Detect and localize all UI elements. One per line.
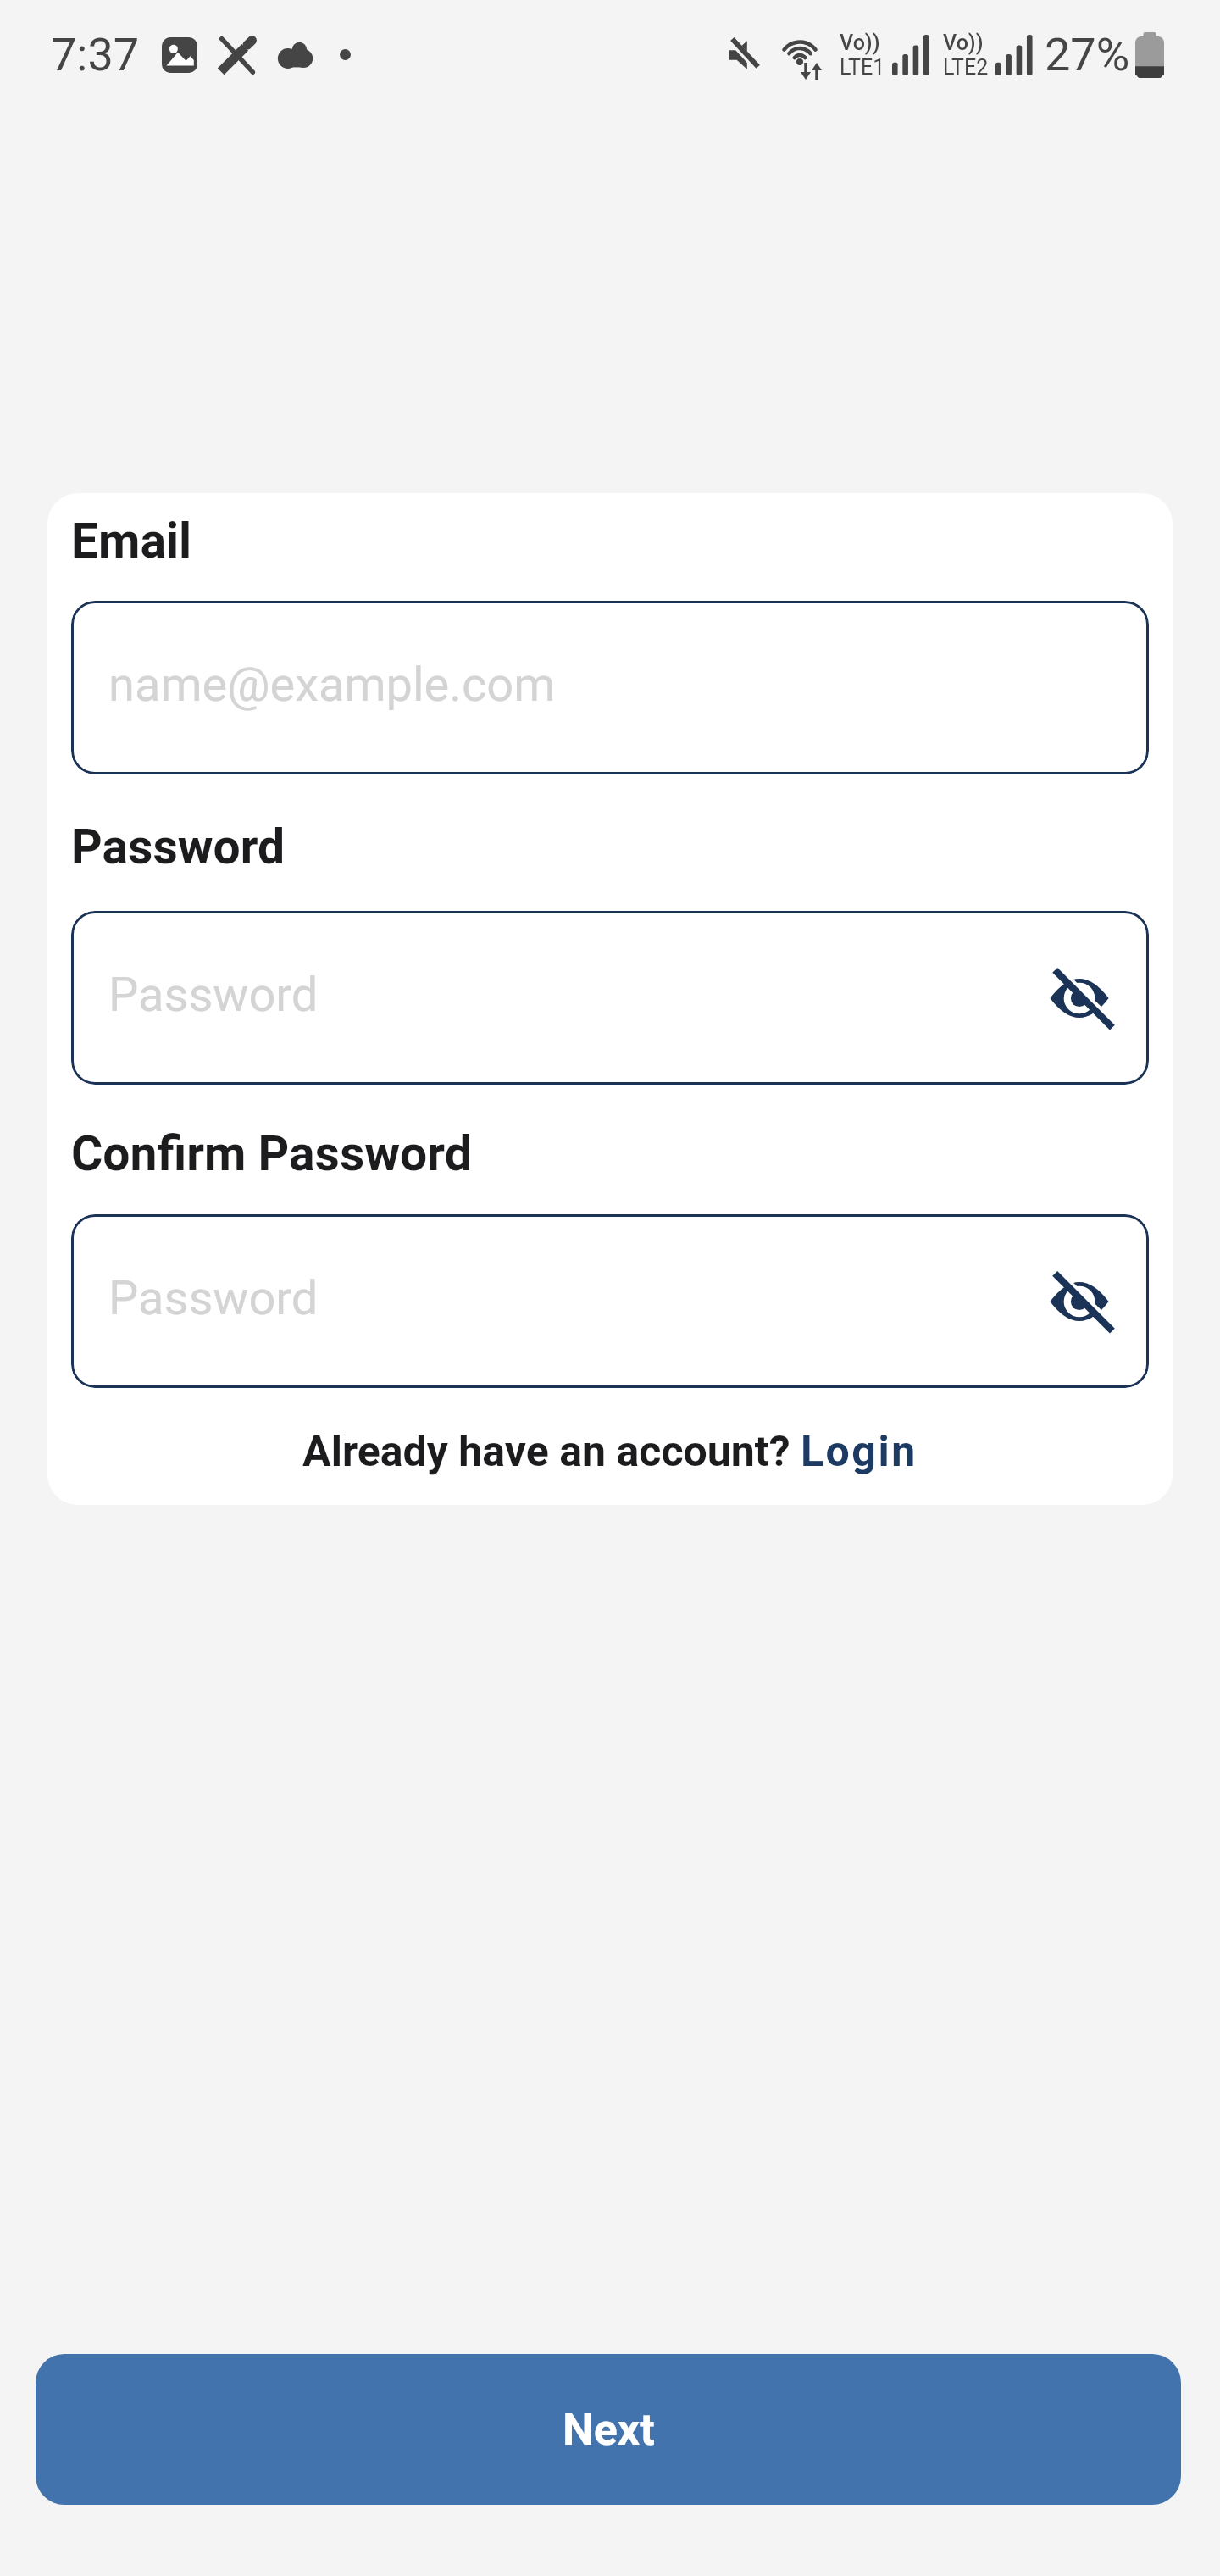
staticText: Password xyxy=(108,1270,319,1326)
button[interactable]: Password xyxy=(71,911,1149,1085)
staticText: 27% xyxy=(1045,28,1130,81)
staticText: Email xyxy=(71,513,192,569)
staticText: Vo)) xyxy=(840,31,880,55)
staticText: Already have an account? Login xyxy=(302,1427,918,1477)
staticText: name@example.com xyxy=(108,657,556,713)
staticText: Password xyxy=(71,819,286,875)
button[interactable]: Already have an account? Login xyxy=(71,1427,1149,1477)
staticText: Confirm Password xyxy=(71,1125,472,1182)
button[interactable]: Next xyxy=(36,2354,1181,2505)
staticText: Password xyxy=(108,967,319,1023)
button[interactable]: name@example.com xyxy=(71,601,1149,774)
staticText: 7:37 xyxy=(51,28,140,81)
staticText: Vo)) xyxy=(943,31,984,55)
button[interactable]: Password xyxy=(71,1214,1149,1388)
staticText: Next xyxy=(563,2404,655,2456)
staticText: LTE2 xyxy=(943,55,989,80)
staticText: LTE1 xyxy=(840,55,885,80)
